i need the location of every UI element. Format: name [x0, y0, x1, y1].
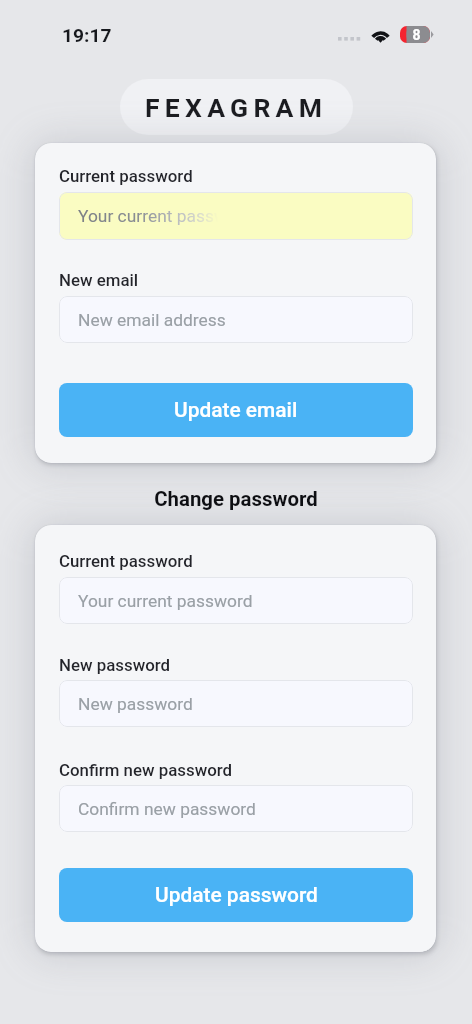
staticText: FEXAGRAM [145, 92, 328, 123]
button[interactable]: Update email [59, 383, 413, 437]
staticText: Your current password [78, 206, 253, 226]
other: Battery 8 percent [400, 26, 434, 43]
button[interactable]: Confirm new password [59, 785, 413, 832]
staticText: Current password [59, 166, 193, 186]
staticText: New email [59, 270, 139, 290]
staticText: New password [59, 655, 171, 675]
staticText: 8 [404, 27, 429, 43]
staticText: Change password [0, 487, 472, 511]
button[interactable]: Update password [59, 868, 413, 922]
other: Wi-Fi [370, 26, 391, 42]
staticText: Update email [174, 398, 298, 422]
button[interactable]: Your current password [59, 192, 413, 240]
staticText: Current password [59, 551, 193, 571]
button[interactable]: FEXAGRAM [120, 79, 353, 135]
button[interactable]: New email address [59, 296, 413, 343]
staticText: Confirm new password [59, 760, 233, 780]
staticText: 19:17 [62, 24, 112, 47]
staticText: Confirm new password [78, 799, 256, 819]
staticText: Update password [155, 883, 318, 907]
staticText: New password [78, 694, 193, 714]
staticText: Your current password [78, 591, 253, 611]
other: Mobile signal [338, 37, 362, 43]
button[interactable]: Your current password [59, 577, 413, 624]
button[interactable]: New password [59, 680, 413, 727]
staticText: New email address [78, 310, 226, 330]
